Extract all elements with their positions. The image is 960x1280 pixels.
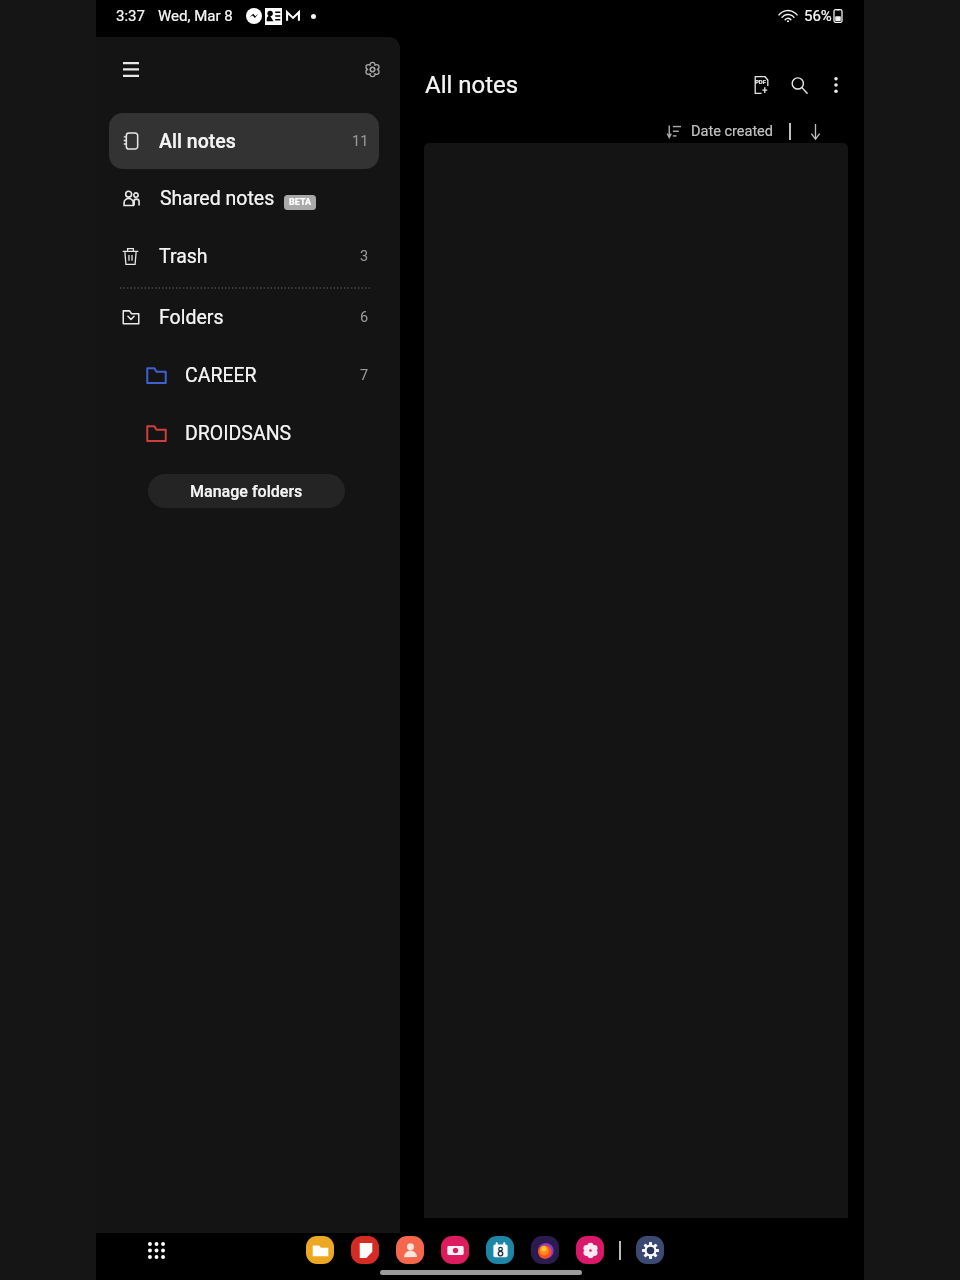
staticText: Wed, Mar 8 <box>158 7 233 25</box>
button[interactable]: Settings <box>636 1236 664 1264</box>
button[interactable]: Manage folders <box>148 474 345 508</box>
button[interactable]: Date created <box>663 119 777 144</box>
staticText: Trash <box>159 245 208 268</box>
button[interactable]: Sort order <box>802 118 828 144</box>
button[interactable]: Navigation menu <box>115 53 147 85</box>
button[interactable]: Import PDF <box>741 65 781 105</box>
staticText: BETA <box>289 197 311 208</box>
button[interactable]: Camera <box>441 1236 469 1264</box>
staticText: 3:37 <box>116 7 145 25</box>
button[interactable]: Trash <box>109 230 379 282</box>
staticText: 11 <box>352 133 369 150</box>
staticText: Shared notes <box>160 187 275 210</box>
staticText: DROIDSANS <box>185 422 292 445</box>
button[interactable]: Calendar <box>486 1236 514 1264</box>
staticText: Manage folders <box>190 482 303 501</box>
staticText: Folders <box>159 306 224 329</box>
button[interactable]: Settings <box>356 53 388 85</box>
button[interactable]: Notes <box>351 1236 379 1264</box>
staticText: All notes <box>425 71 519 99</box>
button[interactable]: Search <box>779 65 819 105</box>
button[interactable]: Firefox <box>531 1236 559 1264</box>
button[interactable]: All apps <box>140 1234 172 1266</box>
button[interactable]: More options <box>816 65 856 105</box>
button[interactable]: All notes <box>109 113 379 169</box>
staticText: 3 <box>360 248 369 265</box>
button[interactable]: Gallery <box>576 1236 604 1264</box>
button[interactable]: DROIDSANS <box>109 407 379 459</box>
button[interactable]: CAREER <box>109 349 379 401</box>
staticText: PDF <box>755 78 767 85</box>
staticText: 56% <box>804 7 832 25</box>
staticText: All notes <box>159 130 236 153</box>
staticText: CAREER <box>185 364 257 387</box>
button[interactable]: Shared notes <box>109 172 379 224</box>
staticText: 6 <box>360 309 369 326</box>
staticText: 7 <box>360 367 369 384</box>
staticText: Date created <box>691 123 773 140</box>
button[interactable]: Contacts <box>396 1236 424 1264</box>
button[interactable]: My Files <box>306 1236 334 1264</box>
button[interactable]: Folders <box>109 291 379 343</box>
